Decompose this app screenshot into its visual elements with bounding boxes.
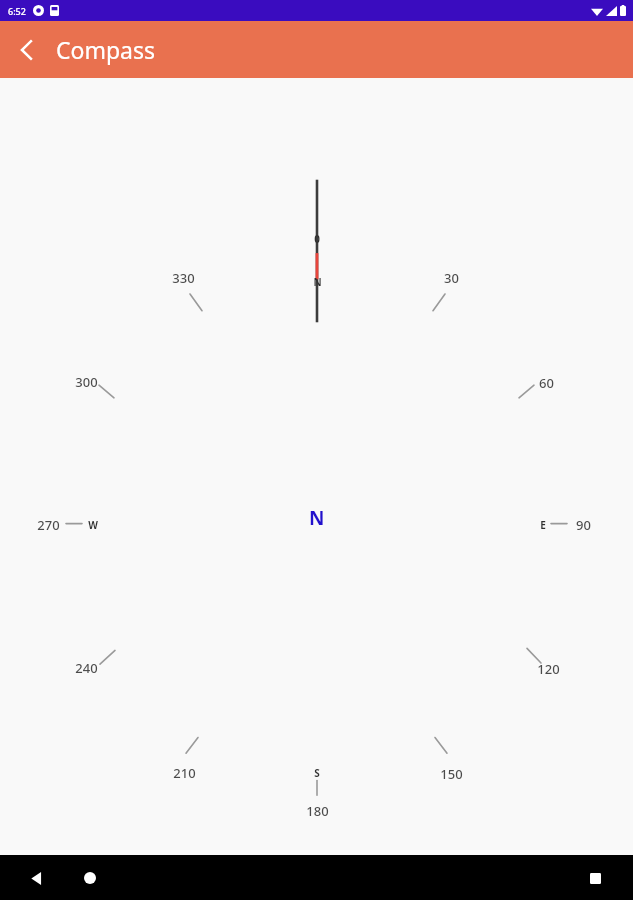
staticText: 300 xyxy=(75,373,98,391)
staticText: 30 xyxy=(444,269,459,287)
staticText: 180 xyxy=(306,802,329,820)
staticText: W xyxy=(88,518,98,532)
staticText: 90 xyxy=(576,516,591,534)
staticText: Compass xyxy=(56,34,156,65)
staticText: 6:52 xyxy=(8,5,26,17)
staticText: 240 xyxy=(75,659,98,677)
staticText: 60 xyxy=(539,374,554,392)
button[interactable]: Recent apps xyxy=(575,858,615,898)
staticText: 150 xyxy=(440,765,463,783)
button[interactable]: Back xyxy=(4,27,50,73)
button[interactable]: Back xyxy=(16,858,56,898)
staticText: 270 xyxy=(37,516,60,534)
staticText: S xyxy=(314,766,320,780)
staticText: 330 xyxy=(172,269,195,287)
staticText: 210 xyxy=(173,764,196,782)
staticText: 0 xyxy=(314,232,320,246)
staticText: E xyxy=(540,518,546,532)
staticText: N xyxy=(313,275,322,289)
button[interactable]: Home xyxy=(70,858,110,898)
staticText: 120 xyxy=(537,660,560,678)
staticText: N xyxy=(309,505,325,531)
